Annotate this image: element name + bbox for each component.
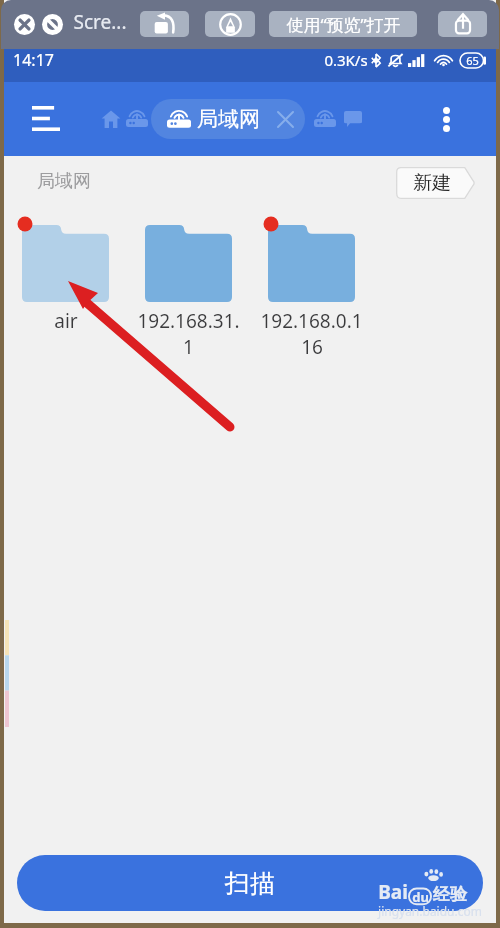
staticText: 192.168.0.1: [260, 308, 363, 334]
other: Markup: [219, 13, 242, 36]
staticText: jingyan.baidu.com: [378, 903, 482, 919]
button[interactable]: 扫描: [17, 855, 483, 911]
staticText: 65: [466, 53, 479, 68]
button[interactable]: 192.168.31.: [136, 221, 241, 366]
button[interactable]: Home: [96, 104, 126, 134]
staticText: Scre...: [73, 9, 127, 35]
button[interactable]: Delete: [42, 14, 63, 35]
staticText: 14:17: [13, 49, 54, 71]
button[interactable]: 局域网: [151, 99, 305, 139]
button[interactable]: 新建: [396, 167, 476, 199]
staticText: 1: [183, 334, 194, 360]
staticText: 使用“预览”打开: [286, 13, 401, 36]
staticText: Bai: [378, 879, 408, 905]
staticText: 0.3K/s: [324, 50, 368, 70]
button[interactable]: 192.168.0.1: [259, 221, 364, 366]
staticText: 经验: [433, 884, 467, 905]
staticText: 192.168.31.: [137, 308, 240, 334]
button[interactable]: 使用“预览”打开: [269, 11, 417, 37]
button[interactable]: Close tab: [270, 104, 300, 134]
staticText: du: [412, 888, 429, 906]
staticText: air: [54, 308, 78, 334]
button[interactable]: Tab 2: [310, 104, 340, 134]
button[interactable]: Tab 3: [338, 104, 368, 134]
button[interactable]: Share: [438, 11, 487, 37]
button[interactable]: Menu: [22, 94, 70, 142]
staticText: 扫描: [225, 868, 275, 899]
button[interactable]: air: [13, 221, 118, 366]
button[interactable]: Markup: [205, 11, 255, 37]
button[interactable]: Rotate: [140, 11, 189, 37]
staticText: 16: [301, 334, 323, 360]
staticText: 局域网: [37, 170, 91, 193]
other: Rotate: [153, 12, 177, 36]
button[interactable]: Close: [14, 14, 35, 35]
button[interactable]: More options: [430, 103, 462, 135]
button[interactable]: Router tab: [122, 104, 152, 134]
other: Share: [452, 12, 474, 36]
staticText: 局域网: [197, 106, 260, 132]
staticText: 新建: [413, 171, 451, 195]
